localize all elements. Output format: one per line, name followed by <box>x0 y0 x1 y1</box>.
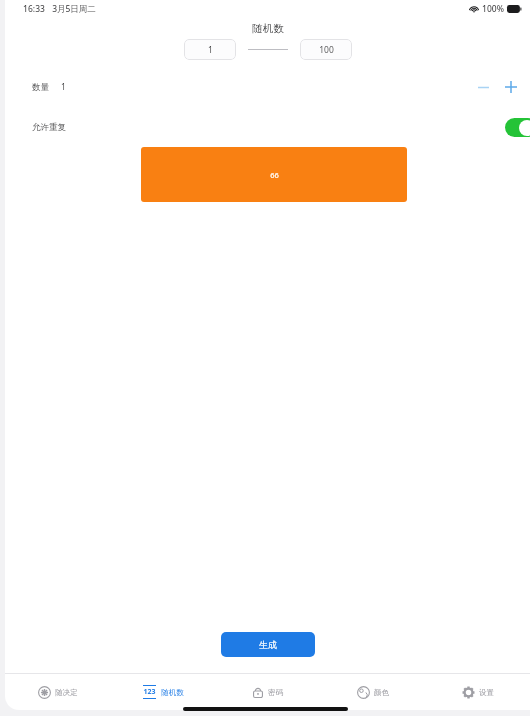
staticText: 设置 <box>479 688 494 697</box>
staticText: 随决定 <box>55 688 78 697</box>
staticText: 66 <box>270 170 279 180</box>
staticText: 颜色 <box>374 688 389 697</box>
button[interactable]: 颜色 <box>320 674 425 710</box>
button[interactable]: 设置 <box>425 674 530 710</box>
button[interactable]: 随决定 <box>5 674 110 710</box>
staticText: 数量 <box>32 82 49 93</box>
staticText: 允许重复 <box>32 122 66 133</box>
button[interactable]: Allow repeat toggle <box>505 118 530 137</box>
button[interactable]: 生成 <box>221 632 315 657</box>
button[interactable]: Increase <box>500 76 522 98</box>
button[interactable]: Decrease <box>472 76 494 98</box>
button[interactable]: 100 <box>300 39 352 60</box>
button[interactable]: 1 <box>184 39 236 60</box>
staticText: 随机数 <box>161 688 184 697</box>
button[interactable]: 66 <box>141 147 407 202</box>
staticText: 1 <box>61 81 66 93</box>
staticText: 100% <box>482 3 504 15</box>
button[interactable]: 123 <box>110 674 215 710</box>
staticText: 100 <box>319 44 334 56</box>
staticText: 123 <box>143 687 156 697</box>
staticText: 3月5日周二 <box>52 3 96 15</box>
button[interactable]: 密码 <box>215 674 320 710</box>
staticText: 生成 <box>259 639 277 650</box>
staticText: 1 <box>208 44 213 56</box>
staticText: 密码 <box>268 688 283 697</box>
staticText: 16:33 <box>23 3 45 15</box>
staticText: 随机数 <box>252 22 284 35</box>
